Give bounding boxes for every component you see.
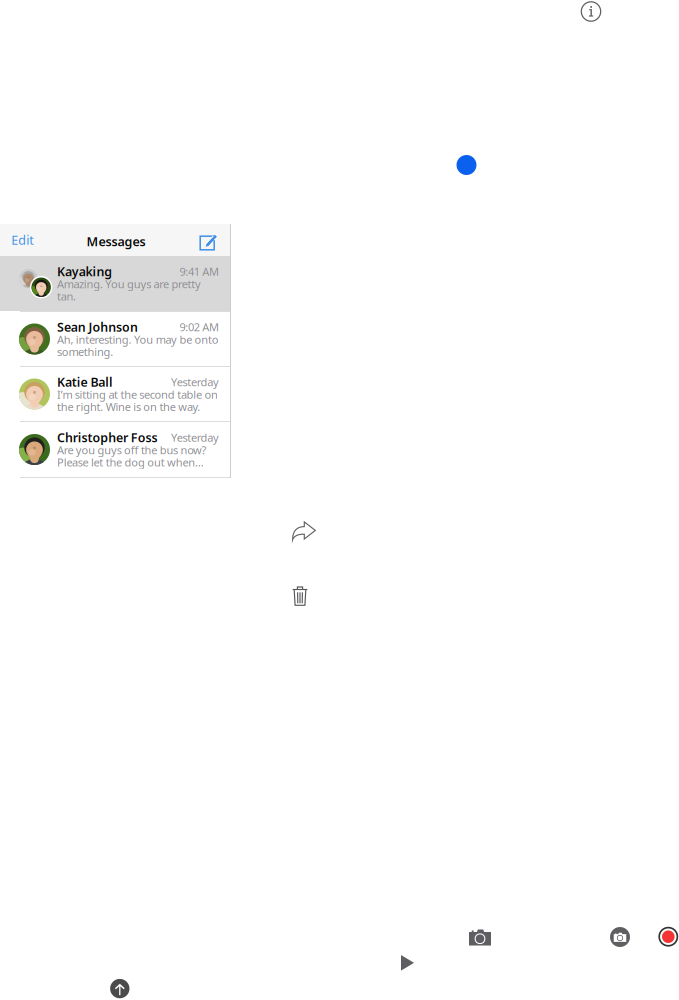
- staticText: Katie Ball: [57, 373, 113, 390]
- button[interactable]: Camera: [469, 929, 491, 945]
- button[interactable]: New Message: [185, 224, 231, 256]
- staticText: Kayaking: [57, 263, 112, 280]
- staticText: Yesterday: [171, 374, 219, 389]
- button[interactable]: Status: [456, 155, 476, 175]
- staticText: Christopher Foss: [57, 429, 157, 446]
- button[interactable]: Record: [658, 927, 678, 947]
- staticText: Yesterday: [171, 430, 219, 445]
- button[interactable]: Edit: [0, 224, 46, 256]
- button[interactable]: Kayaking: [0, 256, 231, 311]
- button[interactable]: Take Photo: [610, 927, 630, 947]
- button[interactable]: Send: [110, 979, 129, 998]
- staticText: 9:41 AM: [179, 264, 219, 279]
- staticText: Sean Johnson: [57, 318, 138, 335]
- button[interactable]: Sean Johnson: [0, 312, 231, 366]
- button[interactable]: Delete: [292, 586, 307, 606]
- button[interactable]: Christopher Foss: [0, 422, 231, 477]
- staticText: Messages: [86, 233, 145, 250]
- staticText: Ah, interesting. You may be onto somethi…: [57, 333, 219, 358]
- staticText: Are you guys off the bus now? Please let…: [57, 444, 207, 468]
- button[interactable]: Info: [580, 0, 602, 22]
- button[interactable]: Katie Ball: [0, 367, 231, 421]
- staticText: Amazing. You guys are pretty tan.: [57, 278, 201, 302]
- button[interactable]: Share: [291, 521, 316, 541]
- staticText: Edit: [11, 231, 34, 249]
- staticText: 9:02 AM: [179, 319, 219, 334]
- button[interactable]: Play: [401, 955, 414, 971]
- staticText: I’m sitting at the second table on the r…: [57, 388, 218, 413]
